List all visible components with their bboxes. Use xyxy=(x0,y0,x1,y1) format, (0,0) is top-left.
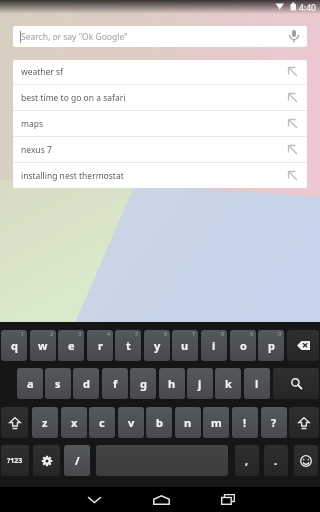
staticText: z xyxy=(42,415,48,430)
staticText: Search, or say "Ok Google" xyxy=(21,31,128,43)
button[interactable] xyxy=(294,445,318,476)
staticText: k xyxy=(225,376,232,391)
staticText: 4 xyxy=(107,330,111,337)
staticText: d xyxy=(83,376,90,391)
button[interactable] xyxy=(1,407,28,438)
staticText: u xyxy=(181,338,189,353)
staticText: i xyxy=(212,338,216,353)
button[interactable] xyxy=(96,445,228,476)
button[interactable]: installing nest thermostat xyxy=(13,163,307,188)
staticText: 1 xyxy=(21,330,25,337)
button[interactable]: t xyxy=(115,330,141,361)
staticText: 5 xyxy=(135,330,139,337)
staticText: a xyxy=(27,376,34,391)
staticText: weather sf xyxy=(21,66,288,78)
staticText: n xyxy=(184,415,192,430)
button[interactable]: p xyxy=(258,330,284,361)
button[interactable]: s xyxy=(45,368,71,399)
button[interactable] xyxy=(149,489,173,510)
button[interactable]: a xyxy=(17,368,43,399)
button[interactable]: g xyxy=(130,368,156,399)
button[interactable]: z xyxy=(32,407,58,438)
button[interactable]: maps xyxy=(13,111,307,136)
staticText: y xyxy=(154,338,161,353)
button[interactable]: d xyxy=(73,368,99,399)
button[interactable]: u xyxy=(172,330,198,361)
button[interactable]: nexus 7 xyxy=(13,137,307,162)
staticText: t xyxy=(126,338,131,353)
button[interactable]: ? xyxy=(261,407,287,438)
staticText: 4:40 xyxy=(299,2,316,14)
staticText: h xyxy=(168,376,176,391)
staticText: nexus 7 xyxy=(21,144,288,156)
button[interactable]: ! xyxy=(232,407,258,438)
button[interactable]: , xyxy=(235,445,259,476)
staticText: best time to go on a safari xyxy=(21,92,288,104)
button[interactable] xyxy=(33,445,60,476)
staticText: j xyxy=(198,376,202,391)
staticText: w xyxy=(38,338,48,353)
button[interactable]: n xyxy=(175,407,201,438)
staticText: l xyxy=(255,376,259,391)
staticText: maps xyxy=(21,118,288,130)
staticText: ! xyxy=(243,415,247,430)
button[interactable] xyxy=(216,489,240,510)
staticText: f xyxy=(113,376,118,391)
button[interactable]: weather sf xyxy=(13,60,307,84)
staticText: m xyxy=(211,415,222,430)
staticText: ? xyxy=(271,415,277,430)
staticText: s xyxy=(55,376,61,391)
staticText: ?123 xyxy=(7,456,23,466)
button[interactable]: j xyxy=(187,368,213,399)
staticText: b xyxy=(156,415,163,430)
button[interactable]: o xyxy=(230,330,256,361)
button[interactable] xyxy=(273,368,319,399)
staticText: 3 xyxy=(78,330,82,337)
button[interactable]: y xyxy=(144,330,170,361)
staticText: r xyxy=(98,338,103,353)
button[interactable]: k xyxy=(215,368,241,399)
staticText: g xyxy=(140,376,147,391)
staticText: 8 xyxy=(221,330,225,337)
staticText: q xyxy=(11,338,18,353)
button[interactable]: best time to go on a safari xyxy=(13,85,307,110)
button[interactable]: / xyxy=(64,445,90,476)
button[interactable]: c xyxy=(89,407,115,438)
button[interactable] xyxy=(287,330,319,361)
staticText: 7 xyxy=(192,330,196,337)
staticText: 0 xyxy=(278,330,282,337)
staticText: c xyxy=(99,415,105,430)
button[interactable]: x xyxy=(61,407,87,438)
staticText: x xyxy=(71,415,78,430)
button[interactable]: v xyxy=(118,407,144,438)
staticText: . xyxy=(274,453,278,468)
button[interactable]: ?123 xyxy=(1,445,29,476)
button[interactable]: q xyxy=(1,330,27,361)
button[interactable]: f xyxy=(102,368,128,399)
button[interactable]: w xyxy=(30,330,56,361)
button[interactable] xyxy=(82,489,106,510)
button[interactable] xyxy=(289,407,319,438)
staticText: installing nest thermostat xyxy=(21,170,288,182)
button[interactable]: b xyxy=(146,407,172,438)
button[interactable]: . xyxy=(264,445,288,476)
staticText: 9 xyxy=(250,330,254,337)
button[interactable]: Search, or say "Ok Google" xyxy=(13,26,307,47)
staticText: e xyxy=(68,338,75,353)
staticText: 6 xyxy=(164,330,168,337)
staticText: p xyxy=(268,338,275,353)
staticText: / xyxy=(75,453,80,468)
staticText: v xyxy=(128,415,135,430)
staticText: , xyxy=(245,453,249,468)
button[interactable]: m xyxy=(203,407,229,438)
staticText: 2 xyxy=(50,330,54,337)
button[interactable]: l xyxy=(244,368,270,399)
button[interactable]: r xyxy=(87,330,113,361)
button[interactable]: e xyxy=(58,330,84,361)
button[interactable]: i xyxy=(201,330,227,361)
staticText: o xyxy=(240,338,247,353)
button[interactable]: h xyxy=(159,368,185,399)
